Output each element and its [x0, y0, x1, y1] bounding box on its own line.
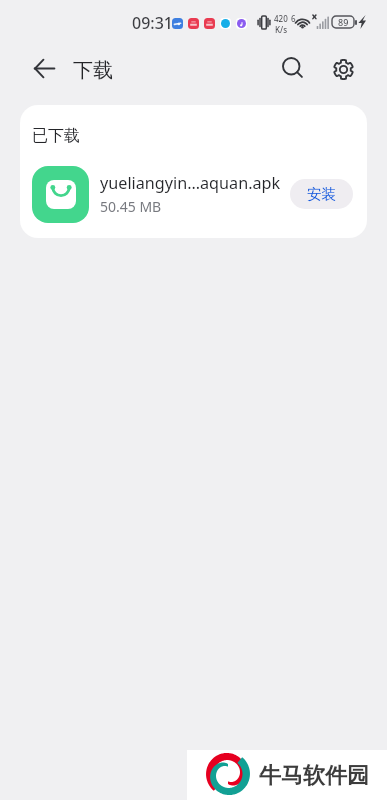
- staticText: K/s: [275, 24, 288, 35]
- staticText: 安装: [307, 185, 337, 203]
- staticText: 50.45 MB: [100, 197, 162, 216]
- button[interactable]: 安装: [290, 179, 353, 209]
- button[interactable]: yueliangyin…aquan.apk: [20, 160, 367, 230]
- staticText: 420: [274, 13, 288, 24]
- staticText: 牛马软件园: [259, 762, 369, 790]
- button[interactable]: Settings: [321, 47, 365, 91]
- staticText: 6: [291, 13, 296, 24]
- button[interactable]: Search: [271, 46, 315, 90]
- staticText: 下载: [73, 58, 113, 83]
- button[interactable]: Back: [22, 46, 66, 90]
- staticText: 已下载: [32, 126, 80, 146]
- staticText: 09:31: [132, 12, 173, 34]
- staticText: 89: [338, 16, 349, 28]
- staticText: yueliangyin…aquan.apk: [100, 172, 281, 194]
